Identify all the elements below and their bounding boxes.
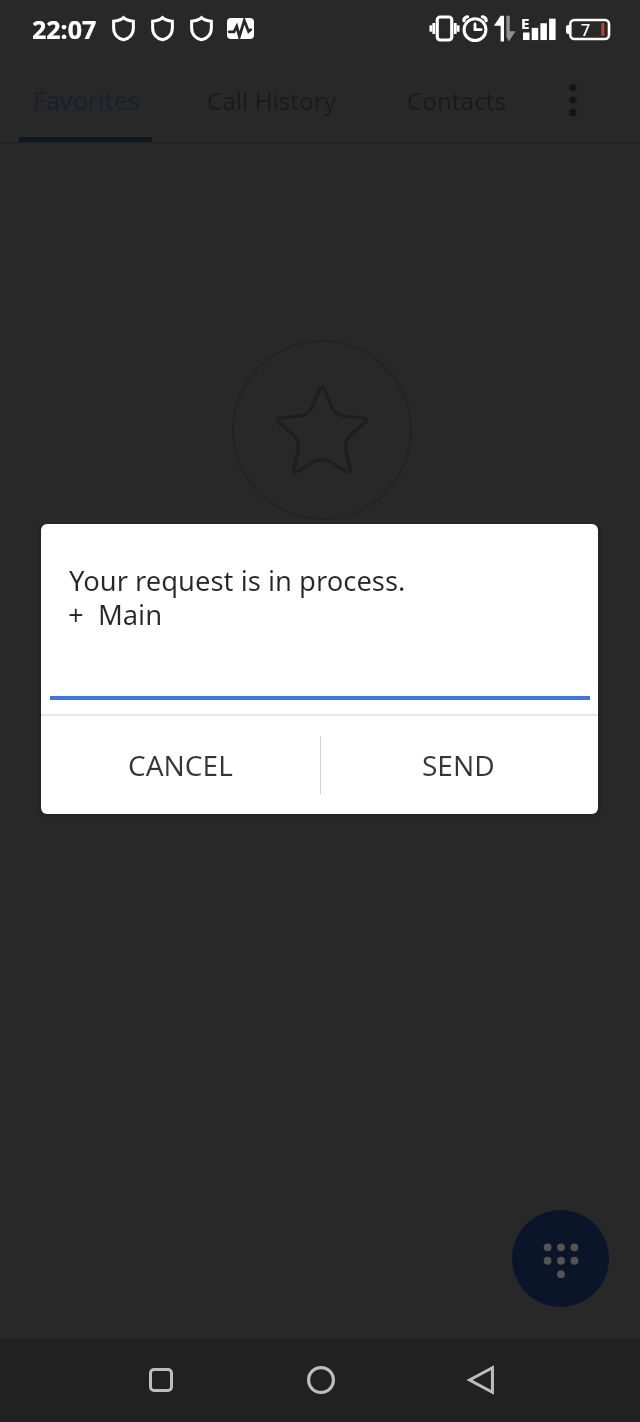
staticText: 7 [581, 19, 591, 38]
button[interactable]: SEND [321, 716, 598, 814]
staticText: E [521, 13, 530, 33]
staticText: Call History [207, 84, 337, 117]
staticText: Contacts [407, 84, 507, 117]
staticText: Favorites [33, 83, 140, 117]
staticText: CANCEL [128, 746, 233, 784]
staticText: + Main [68, 596, 163, 633]
button[interactable]: Favorites [0, 58, 173, 142]
button[interactable]: CANCEL [41, 716, 320, 814]
button[interactable]: Home [279, 1338, 363, 1422]
button[interactable]: Dialpad [512, 1210, 609, 1307]
staticText: Your request is in process. [69, 562, 406, 599]
staticText: SEND [422, 746, 495, 784]
staticText: 22:07 [32, 12, 97, 46]
button[interactable]: Back [439, 1338, 523, 1422]
button[interactable]: Recents [119, 1338, 203, 1422]
